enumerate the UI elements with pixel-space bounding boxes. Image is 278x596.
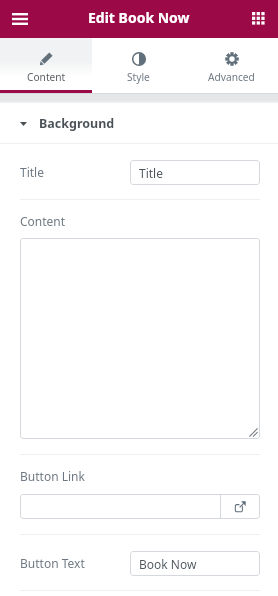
staticText: Title xyxy=(139,165,163,181)
staticText: Style xyxy=(127,70,150,84)
staticText: Content xyxy=(27,70,66,84)
staticText: Title xyxy=(20,164,44,180)
button[interactable]: Background xyxy=(0,103,278,144)
staticText: Edit Book Now xyxy=(88,8,190,27)
staticText: Book Now xyxy=(139,556,197,572)
button[interactable]: Advanced xyxy=(185,38,278,93)
staticText: Button Link xyxy=(20,468,85,484)
button[interactable] xyxy=(20,238,260,439)
button[interactable]: Style xyxy=(92,38,185,93)
button[interactable]: Content xyxy=(0,38,92,93)
button[interactable]: Widgets panel xyxy=(238,0,278,38)
staticText: Content xyxy=(20,213,66,229)
staticText: Background xyxy=(39,115,115,132)
staticText: Advanced xyxy=(208,70,255,84)
button[interactable]: Link options xyxy=(221,494,260,519)
button[interactable]: Book Now xyxy=(130,551,260,576)
button[interactable]: Title xyxy=(130,160,260,185)
staticText: Button Text xyxy=(20,555,85,571)
button[interactable]: Menu xyxy=(0,0,40,38)
button[interactable] xyxy=(20,494,220,519)
